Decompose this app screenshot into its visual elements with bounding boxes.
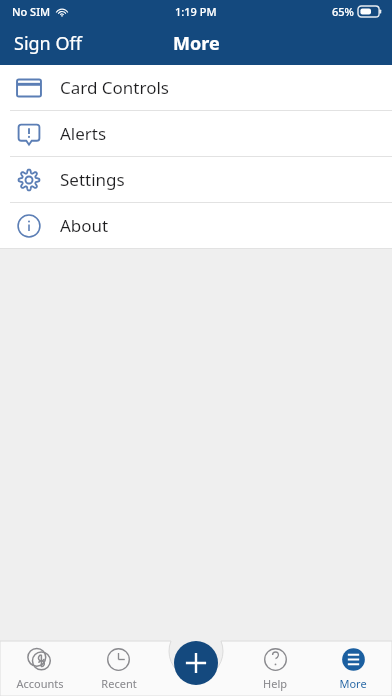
staticText: About <box>60 214 109 237</box>
staticText: Sign Off <box>14 31 82 56</box>
staticText: 65% <box>332 4 354 19</box>
button[interactable]: About <box>0 203 392 248</box>
button[interactable]: Alerts <box>0 111 392 156</box>
button[interactable]: Add <box>174 641 218 685</box>
staticText: 1:19 PM <box>175 4 217 19</box>
staticText: Help <box>263 676 287 691</box>
staticText: Card Controls <box>60 76 170 99</box>
staticText: Accounts <box>16 676 64 691</box>
button[interactable]: Settings <box>0 157 392 202</box>
button[interactable]: Sign Off <box>0 25 96 62</box>
button[interactable]: Accounts <box>0 641 79 696</box>
staticText: Recent <box>101 676 137 691</box>
staticText: Settings <box>60 168 125 191</box>
button[interactable]: Card Controls <box>0 65 392 110</box>
button[interactable]: Recent <box>79 641 158 696</box>
button[interactable]: Help <box>236 641 314 696</box>
staticText: More <box>339 676 367 691</box>
staticText: More <box>173 31 220 56</box>
staticText: Alerts <box>60 122 107 145</box>
button[interactable]: More <box>314 641 392 696</box>
staticText: No SIM <box>12 4 51 19</box>
